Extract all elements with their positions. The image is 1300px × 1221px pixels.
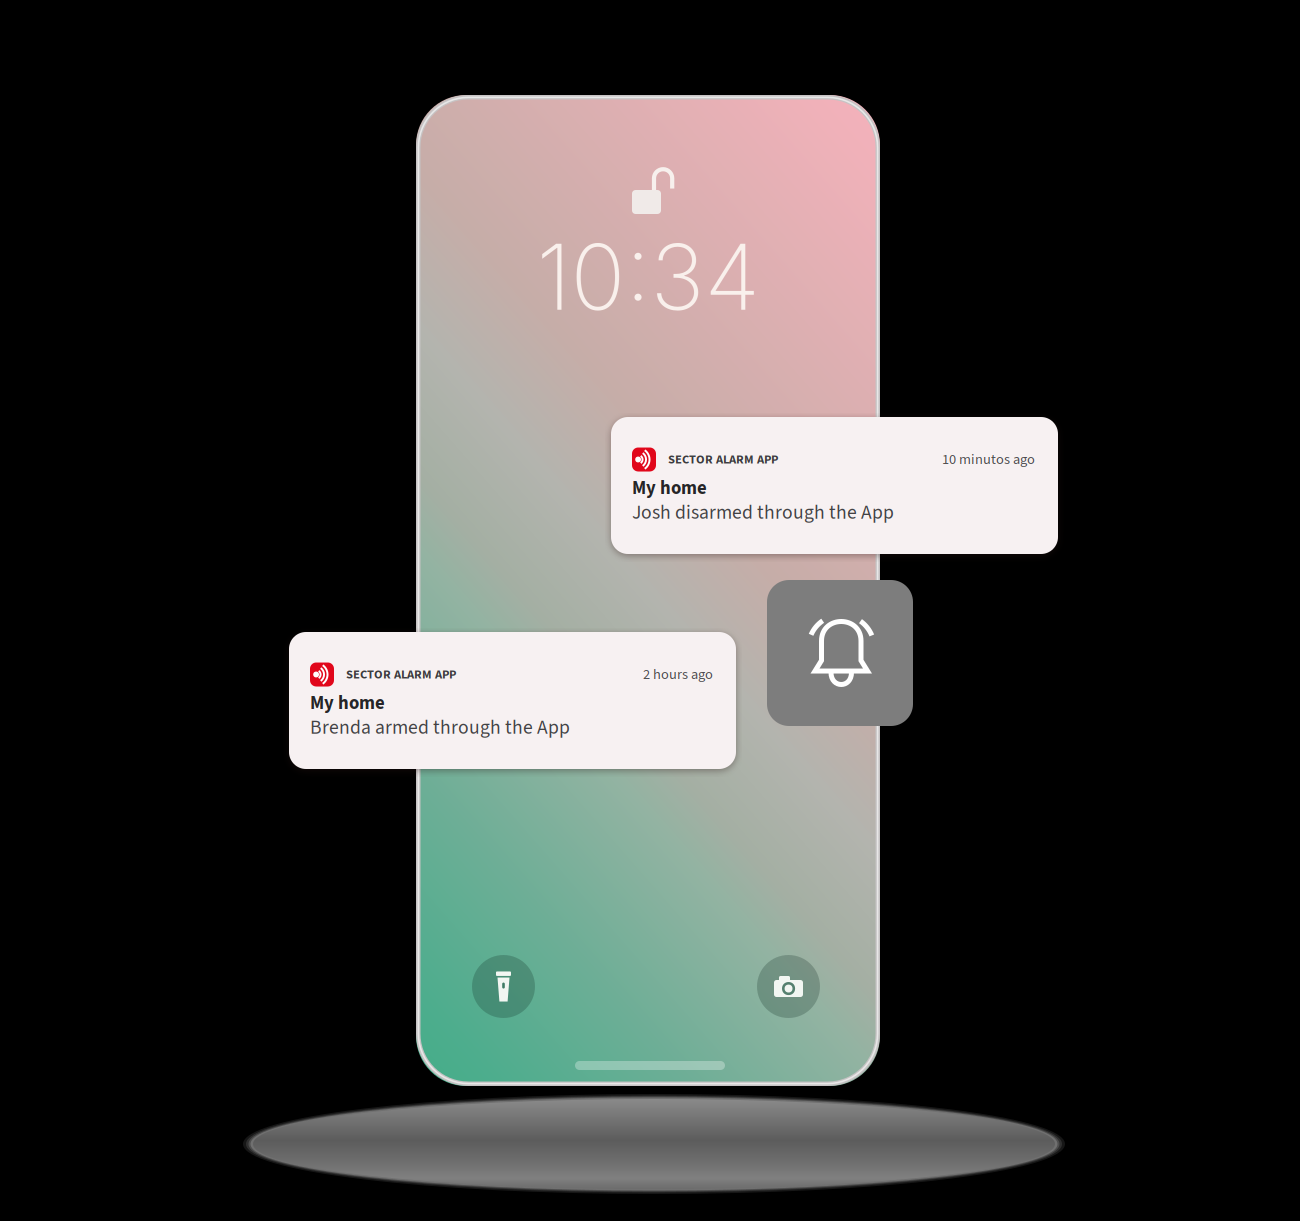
- button[interactable]: Flashlight: [472, 955, 535, 1018]
- button[interactable]: SECTOR ALARM APP: [289, 632, 736, 769]
- staticText: My home: [310, 690, 385, 717]
- staticText: Josh disarmed through the App: [632, 499, 894, 526]
- staticText: SECTOR ALARM APP: [668, 451, 778, 468]
- button[interactable]: SECTOR ALARM APP: [611, 417, 1058, 554]
- staticText: 10:34: [536, 222, 759, 332]
- staticText: SECTOR ALARM APP: [346, 666, 456, 683]
- button[interactable]: Notifications: [767, 580, 913, 726]
- button[interactable]: Camera: [757, 955, 820, 1018]
- staticText: 10 minutos ago: [942, 449, 1035, 470]
- staticText: My home: [632, 475, 707, 502]
- staticText: 2 hours ago: [643, 664, 713, 685]
- staticText: Brenda armed through the App: [310, 714, 570, 741]
